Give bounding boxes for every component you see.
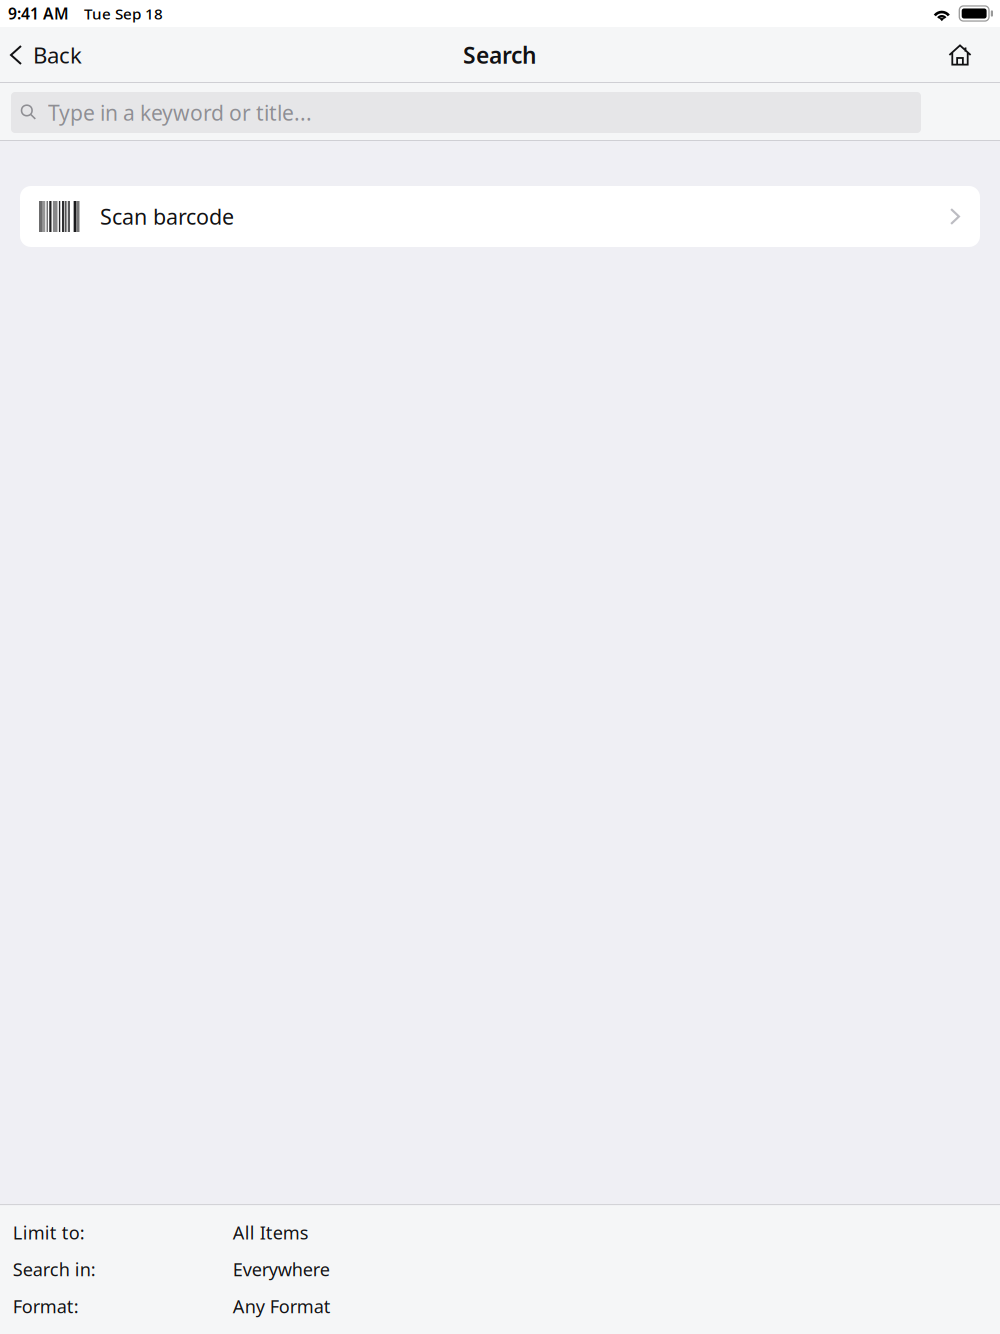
staticText: Search	[463, 39, 537, 71]
staticText: Scan barcode	[100, 202, 234, 231]
staticText: 9:41 AM	[8, 3, 69, 24]
staticText: Type in a keyword or title...	[48, 98, 312, 127]
button[interactable]: Back	[0, 27, 94, 83]
button[interactable]: Search in:	[0, 1251, 1000, 1288]
staticText: Back	[33, 40, 82, 70]
button[interactable]: Scan barcode	[20, 186, 980, 247]
button[interactable]: Format:	[0, 1288, 1000, 1324]
staticText: Everywhere	[233, 1257, 330, 1282]
staticText: Tue Sep 18	[84, 3, 163, 24]
staticText: Format:	[13, 1294, 79, 1318]
button[interactable]: Type in a keyword or title...	[11, 92, 921, 133]
button[interactable]: Home	[934, 27, 1000, 83]
button[interactable]: Limit to:	[0, 1214, 1000, 1251]
staticText: Search in:	[13, 1257, 96, 1282]
staticText: All Items	[233, 1220, 309, 1245]
staticText: Any Format	[233, 1294, 331, 1318]
staticText: Limit to:	[13, 1220, 85, 1245]
